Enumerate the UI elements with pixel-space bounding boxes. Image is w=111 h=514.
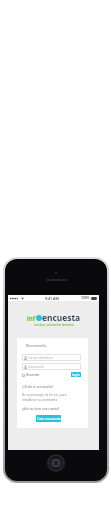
staticText: encuesta [42,312,81,323]
staticText: Bienvenido. [26,343,47,348]
button[interactable]: Crear una cuenta [36,415,61,422]
staticText: inf [27,314,36,322]
staticText: 9:41 AM [45,296,59,301]
staticText: Crear una cuenta [37,417,61,421]
staticText: Login [72,373,80,377]
staticText: No se preocupe, de clic en ¿ para restab… [22,393,81,401]
staticText: 100% [81,296,90,300]
staticText: ¿Aún no tiene una cuenta? [22,407,60,411]
button[interactable]: Recordar [22,373,40,377]
button[interactable]: Login [71,372,81,377]
staticText: Correo electrónico [28,356,54,360]
staticText: Contraseña [28,365,44,369]
staticText: Recordar [26,373,40,377]
staticText: tus ideas, nuestras herramientas [34,323,74,327]
button[interactable]: Home [47,454,65,472]
staticText: ¿Olvidó su contraseña? [22,385,54,389]
